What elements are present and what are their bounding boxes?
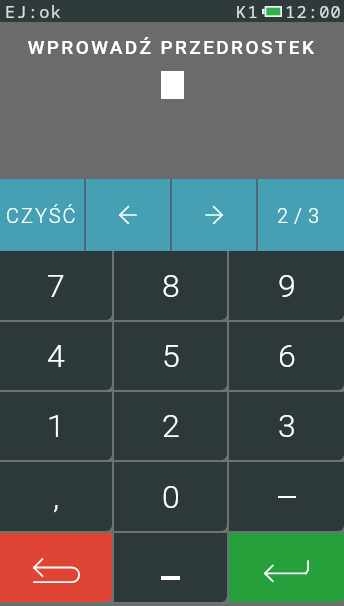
button[interactable]: 3 [229, 392, 344, 460]
staticText: EJ:ok [5, 0, 62, 22]
button[interactable]: Previous [86, 179, 170, 251]
button[interactable]: 8 [114, 251, 227, 320]
staticText: , [53, 478, 60, 516]
button[interactable]: Undo [0, 533, 112, 602]
button[interactable]: 0 [114, 462, 227, 531]
button[interactable]: 9 [229, 251, 344, 320]
button[interactable]: 7 [0, 251, 112, 320]
staticText: 2/3 [277, 204, 326, 227]
staticText: 8 [162, 267, 180, 305]
button[interactable]: 4 [0, 322, 112, 390]
button[interactable]: 2 [114, 392, 227, 460]
staticText: 3 [278, 407, 296, 445]
staticText: 5 [162, 337, 180, 375]
button[interactable]: 2/3 [258, 179, 344, 251]
staticText: 4 [47, 337, 65, 375]
button[interactable]: Enter [229, 533, 344, 602]
button[interactable]: Next [172, 179, 256, 251]
button[interactable]: 6 [229, 322, 344, 390]
staticText: 2 [162, 407, 180, 445]
button[interactable]: 1 [0, 392, 112, 460]
staticText: 6 [278, 337, 296, 375]
staticText: WPROWADŹ PRZEDROSTEK [0, 36, 344, 58]
staticText: CZYŚĆ [6, 204, 78, 227]
button[interactable]: , [0, 462, 112, 531]
staticText: 12:00 [285, 0, 342, 22]
staticText: 0 [162, 478, 180, 516]
staticText: 1 [47, 407, 65, 445]
staticText: 7 [47, 267, 65, 305]
button[interactable] [229, 462, 344, 531]
button[interactable]: Space [114, 533, 227, 602]
button[interactable]: 5 [114, 322, 227, 390]
staticText: 9 [278, 267, 296, 305]
button[interactable]: CZYŚĆ [0, 179, 84, 251]
staticText: K1 [236, 0, 259, 22]
